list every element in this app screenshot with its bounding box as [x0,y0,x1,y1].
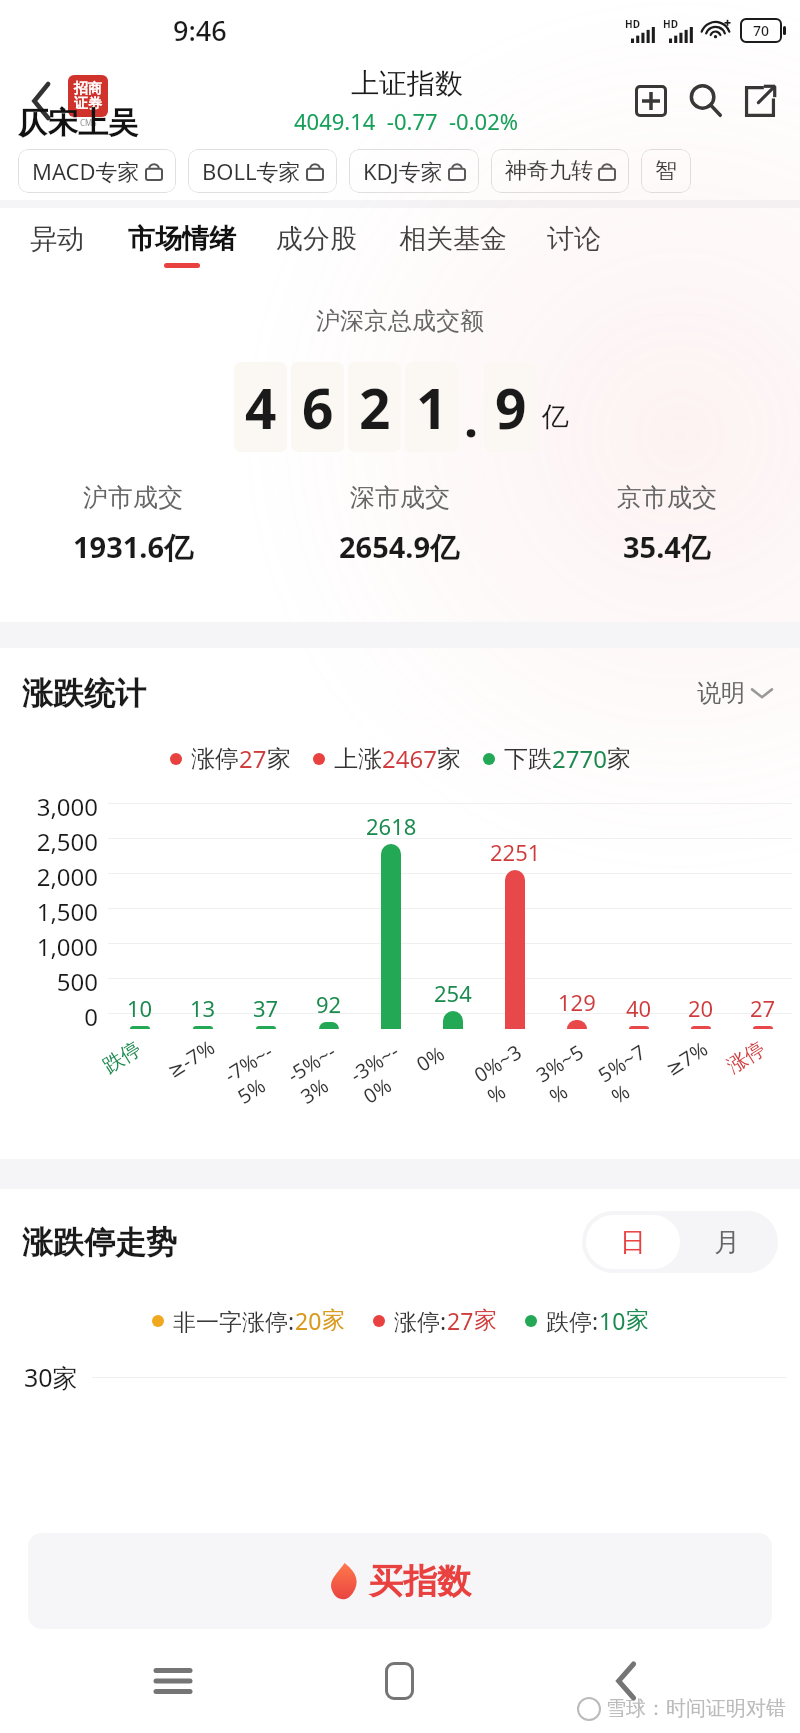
button[interactable]: 月 [680,1215,774,1269]
staticText: 涨跌停走势 [22,1223,177,1262]
staticText: 9:46 [173,12,227,49]
staticText: 智 [655,157,677,185]
button[interactable]: Back [513,1629,740,1733]
staticText: 非一字涨停: [173,1305,295,1336]
button[interactable]: 说明 [691,672,778,714]
button[interactable]: Recents [60,1629,286,1733]
staticText: 20 [295,1305,322,1336]
staticText: ≥-7% [162,1033,220,1084]
staticText: 沪深京总成交额 [316,306,484,336]
button[interactable]: MACD专家 [18,149,176,193]
staticText: 70 [753,21,770,40]
staticText: 家 [267,744,291,774]
button[interactable]: 智 [641,149,691,193]
staticText: 家 [474,1306,497,1335]
staticText: 0 [14,1000,98,1028]
staticText: 27 [239,742,267,775]
staticText: 6 [302,370,334,445]
staticText: 2,000 [14,860,98,893]
staticText: 雪球：时间证明对错 [606,1696,786,1721]
button[interactable]: 成分股 [276,218,357,272]
staticText: 跌停 [98,1036,146,1079]
staticText: 涨停 [191,744,239,774]
staticText: 家 [322,1306,345,1335]
staticText: 跌停: [546,1305,599,1336]
staticText: 1,500 [14,895,98,928]
button[interactable]: Home [286,1629,513,1733]
button[interactable]: Share [734,75,786,127]
staticText: 上涨 [334,744,382,774]
staticText: 92 [316,989,342,1019]
button[interactable]: 异动 [30,218,84,272]
staticText: 涨跌统计 [22,674,146,713]
staticText: 仄宋上吴 [18,104,138,142]
staticText: 家 [437,744,461,774]
staticText: 4049.14 -0.77 -0.02% [294,106,519,136]
staticText: 3,000 [14,790,98,823]
staticText: 上证指数 [351,66,463,101]
staticText: 2 [359,370,391,445]
staticText: 2251 [490,837,541,867]
button[interactable]: Search [680,75,732,127]
staticText: 涨停 [722,1036,770,1079]
staticText: 买指数 [369,1560,471,1603]
button[interactable]: 相关基金 [399,218,507,272]
staticText: -7%~-5% [219,1032,300,1110]
staticText: 129 [558,987,596,1017]
staticText: 说明 [697,678,745,708]
staticText: 涨停: [394,1305,447,1336]
staticText: 月 [714,1226,740,1259]
staticText: 3%~5% [531,1032,611,1109]
button[interactable]: 讨论 [547,218,601,272]
staticText: BOLL专家 [202,156,301,186]
staticText: 异动 [30,222,84,256]
button[interactable]: 神奇九转 [491,149,629,193]
button[interactable]: 市场情绪 [128,218,236,272]
staticText: 10 [127,993,153,1023]
staticText: 9 [495,370,527,445]
staticText: 日 [620,1226,646,1259]
staticText: 0% [411,1039,450,1078]
staticText: 2654.9亿 [339,527,460,567]
staticText: -3%~-0% [345,1032,425,1109]
staticText: HD [663,17,678,31]
button[interactable]: 买指数 [28,1533,772,1629]
staticText: 市场情绪 [128,222,236,256]
staticText: 讨论 [547,222,601,256]
staticText: 1,000 [14,930,98,963]
staticText: 2770 [552,742,607,775]
staticText: 5%~7% [593,1032,673,1109]
button[interactable]: BOLL专家 [188,149,337,193]
staticText: MACD专家 [32,156,140,186]
staticText: KDJ专家 [363,156,443,186]
staticText: 深市成交 [350,482,450,513]
staticText: 27 [750,993,776,1023]
staticText: 13 [190,993,216,1023]
staticText: 0%~3% [469,1032,549,1109]
staticText: ≥7% [660,1035,713,1082]
staticText: 30家 [24,1360,78,1394]
staticText: 2618 [366,811,417,841]
staticText: 成分股 [276,222,357,256]
staticText: 27 [447,1305,474,1336]
staticText: 下跌 [504,744,552,774]
button[interactable]: 日 [586,1215,680,1269]
staticText: 4 [245,370,277,445]
button[interactable]: Back [20,79,64,123]
staticText: 2467 [382,742,437,775]
staticText: HD [625,17,640,31]
button[interactable]: KDJ专家 [349,149,479,193]
staticText: 亿 [542,400,569,434]
staticText: 相关基金 [399,222,507,256]
staticText: 沪市成交 [83,482,183,513]
staticText: 35.4亿 [623,527,710,567]
staticText: . [464,384,479,452]
staticText: 神奇九转 [505,157,593,185]
staticText: 家 [626,1306,649,1335]
staticText: 2,500 [14,825,98,858]
staticText: 20 [688,993,714,1023]
button[interactable]: Add [626,76,676,126]
staticText: 1 [416,370,448,445]
staticText: 500 [14,965,98,998]
staticText: 京市成交 [617,482,717,513]
